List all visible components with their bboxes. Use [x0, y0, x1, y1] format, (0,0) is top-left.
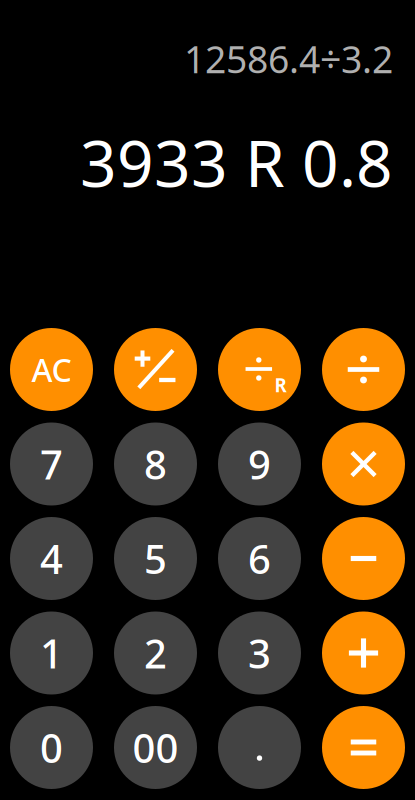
staticText: 1 [40, 626, 63, 679]
button[interactable]: 5 [114, 517, 197, 600]
staticText: 2 [144, 626, 167, 679]
staticText: 3 [248, 626, 271, 679]
button[interactable]: Divide [322, 328, 405, 411]
button[interactable]: Decimal point [218, 706, 301, 789]
staticText: 0 [40, 721, 63, 774]
button[interactable]: Plus [322, 611, 405, 694]
button[interactable]: Divide with remainder [218, 328, 301, 411]
staticText: 7 [40, 437, 63, 490]
button[interactable]: 00 [114, 706, 197, 789]
button[interactable]: Minus [322, 517, 405, 600]
staticText: 3933 R 0.8 [80, 120, 393, 205]
staticText: 8 [144, 437, 167, 490]
button[interactable]: Multiply [322, 422, 405, 505]
staticText: R [274, 373, 286, 397]
button[interactable]: 4 [10, 517, 93, 600]
button[interactable]: Equals [322, 706, 405, 789]
button[interactable]: 1 [10, 611, 93, 694]
staticText: 00 [132, 721, 178, 774]
button[interactable]: 2 [114, 611, 197, 694]
button[interactable]: AC [10, 328, 93, 411]
button[interactable]: Plus or minus [114, 328, 197, 411]
staticText: 5 [144, 532, 167, 585]
staticText: AC [31, 348, 71, 391]
staticText: 6 [248, 532, 271, 585]
button[interactable]: 0 [10, 706, 93, 789]
button[interactable]: 7 [10, 422, 93, 505]
button[interactable]: 9 [218, 422, 301, 505]
button[interactable]: 3 [218, 611, 301, 694]
staticText: 9 [248, 437, 271, 490]
button[interactable]: 8 [114, 422, 197, 505]
button[interactable]: 6 [218, 517, 301, 600]
staticText: 12586.4÷3.2 [184, 34, 393, 84]
staticText: 4 [40, 532, 63, 585]
